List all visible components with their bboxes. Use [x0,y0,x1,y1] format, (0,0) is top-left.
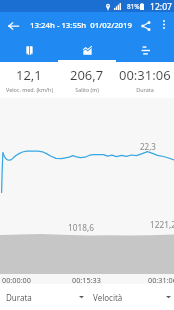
button[interactable]: More options [155,13,173,36]
staticText: Durata [136,86,154,93]
staticText: 206,7 [70,66,104,84]
staticText: 12,1 [16,66,42,84]
button[interactable]: List [116,36,174,62]
button[interactable]: Velocità [87,284,174,310]
button[interactable]: Durata [0,284,87,310]
button[interactable]: Chart [58,36,116,62]
staticText: 00:31:06 [119,66,171,84]
staticText: Salito (m) [75,86,99,93]
staticText: 81% [127,2,140,11]
staticText: 00:15:33 [72,275,101,285]
button[interactable]: Map [0,36,58,62]
staticText: 1018,6 [68,222,94,233]
staticText: 22,3 [140,141,156,152]
button[interactable]: Back [2,14,24,37]
staticText: 00:00:00 [2,275,31,285]
staticText: Durata [6,292,32,303]
button[interactable]: Share [135,14,156,37]
staticText: 00:31:06 [148,275,174,285]
staticText: 13:24h - 13:55h 01/02/2019 [30,20,132,31]
staticText: 12:07 [150,1,172,13]
staticText: Veloc. med. (km/h) [6,86,53,93]
staticText: Velocità [93,292,123,303]
staticText: 1221,2 [150,219,174,230]
